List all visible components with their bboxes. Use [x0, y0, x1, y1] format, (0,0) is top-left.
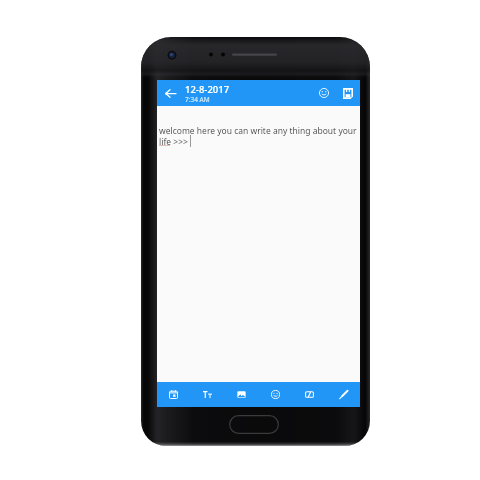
- button[interactable]: Draw: [326, 382, 360, 407]
- button[interactable]: welcome here you can write any thing abo…: [157, 106, 360, 382]
- staticText: 12-8-2017: [185, 83, 230, 96]
- button[interactable]: Back: [159, 82, 181, 104]
- button[interactable]: Emoji: [258, 382, 292, 407]
- staticText: life >>>: [159, 136, 188, 148]
- button[interactable]: Save: [336, 81, 360, 105]
- button[interactable]: Insert image: [224, 382, 258, 407]
- button[interactable]: Emoji: [312, 81, 336, 105]
- staticText: 7:34 AM: [185, 95, 210, 104]
- button[interactable]: Calendar: [157, 382, 190, 407]
- button[interactable]: Style: [292, 382, 326, 407]
- staticText: welcome here you can write any thing abo…: [159, 125, 357, 137]
- button[interactable]: Text format: [190, 382, 224, 407]
